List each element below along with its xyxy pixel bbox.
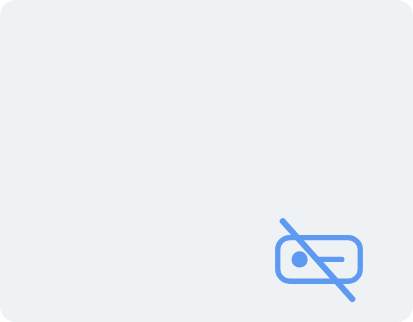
other: Payments unavailable [0,0,413,322]
